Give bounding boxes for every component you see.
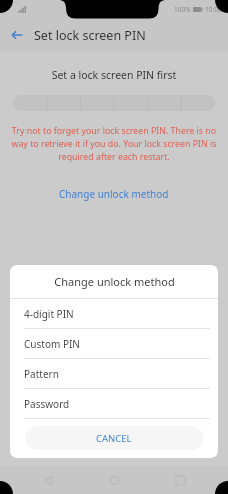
staticText: 4-digit PIN [24,307,74,321]
button[interactable]: Back [0,18,34,52]
button[interactable]: 4-digit PIN [10,299,218,328]
staticText: Password [24,397,70,411]
staticText: Try not to forget your lock screen PIN. … [11,125,217,162]
staticText: Pattern [24,367,59,381]
button[interactable]: Change unlock method [52,183,176,205]
button[interactable]: Pattern [10,359,218,388]
button[interactable]: CANCEL [25,426,203,450]
staticText: 10:00 [205,5,222,14]
staticText: Set lock screen PIN [34,27,146,44]
button[interactable]: Custom PIN [10,329,218,358]
button[interactable]: Password [10,389,218,418]
staticText: Custom PIN [24,337,80,351]
staticText: CANCEL [96,432,132,445]
staticText: Change unlock method [54,274,175,289]
staticText: Set a lock screen PIN first [0,68,228,82]
staticText: 100% [174,5,191,14]
staticText: Change unlock method [59,187,169,201]
